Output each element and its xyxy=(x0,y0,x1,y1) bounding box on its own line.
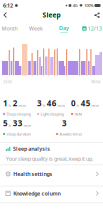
staticText: Sleep xyxy=(42,11,60,19)
staticText: 5 xyxy=(3,118,8,128)
staticText: 3 xyxy=(37,98,42,108)
staticText: 3 xyxy=(62,118,67,128)
staticText: 12/13 xyxy=(88,25,102,32)
staticText: 1 xyxy=(3,98,8,108)
staticText: 100% xyxy=(84,3,93,8)
staticText: settings xyxy=(32,170,53,177)
button[interactable]: Week xyxy=(29,25,43,32)
staticText: min xyxy=(57,103,64,108)
staticText: 0 xyxy=(71,98,76,108)
staticText: 08:04 xyxy=(91,79,100,84)
staticText: Day xyxy=(59,24,69,31)
staticText: 23:06 xyxy=(3,79,12,84)
button[interactable]: Back xyxy=(2,12,8,18)
staticText: column xyxy=(42,190,61,197)
staticText: Sleep xyxy=(13,145,27,152)
staticText: min xyxy=(18,103,25,108)
staticText: 4G xyxy=(73,3,78,8)
staticText: min xyxy=(23,123,30,128)
staticText: 46 xyxy=(47,98,57,108)
button[interactable]: Day xyxy=(59,24,69,34)
staticText: Your sleep quality is great, keep it up. xyxy=(6,155,93,162)
staticText: Light sleeping xyxy=(40,111,63,117)
button[interactable]: Share xyxy=(94,12,99,18)
staticText: REM xyxy=(74,111,82,117)
staticText: h xyxy=(9,103,11,108)
staticText: h xyxy=(43,103,45,108)
staticText: sleep duration xyxy=(6,131,30,137)
staticText: Month xyxy=(1,25,17,32)
button[interactable]: Knowledge xyxy=(0,190,103,199)
staticText: h xyxy=(9,123,11,128)
button[interactable]: Sleep xyxy=(0,145,103,162)
staticText: 45 xyxy=(81,98,91,108)
staticText: 2 xyxy=(13,98,18,108)
staticText: Health xyxy=(13,170,30,177)
staticText: analysis xyxy=(28,145,50,152)
button[interactable]: Health xyxy=(0,170,103,180)
staticText: Awake times xyxy=(59,131,82,137)
staticText: Week xyxy=(29,25,43,32)
staticText: h xyxy=(77,103,79,108)
staticText: Deep sleeping xyxy=(6,111,30,117)
staticText: min xyxy=(91,103,98,108)
button[interactable]: Month xyxy=(1,25,17,32)
staticText: Knowledge xyxy=(13,190,40,197)
staticText: 33 xyxy=(13,118,23,128)
staticText: 6:12 xyxy=(3,2,13,9)
button[interactable]: Pick date xyxy=(82,25,102,32)
